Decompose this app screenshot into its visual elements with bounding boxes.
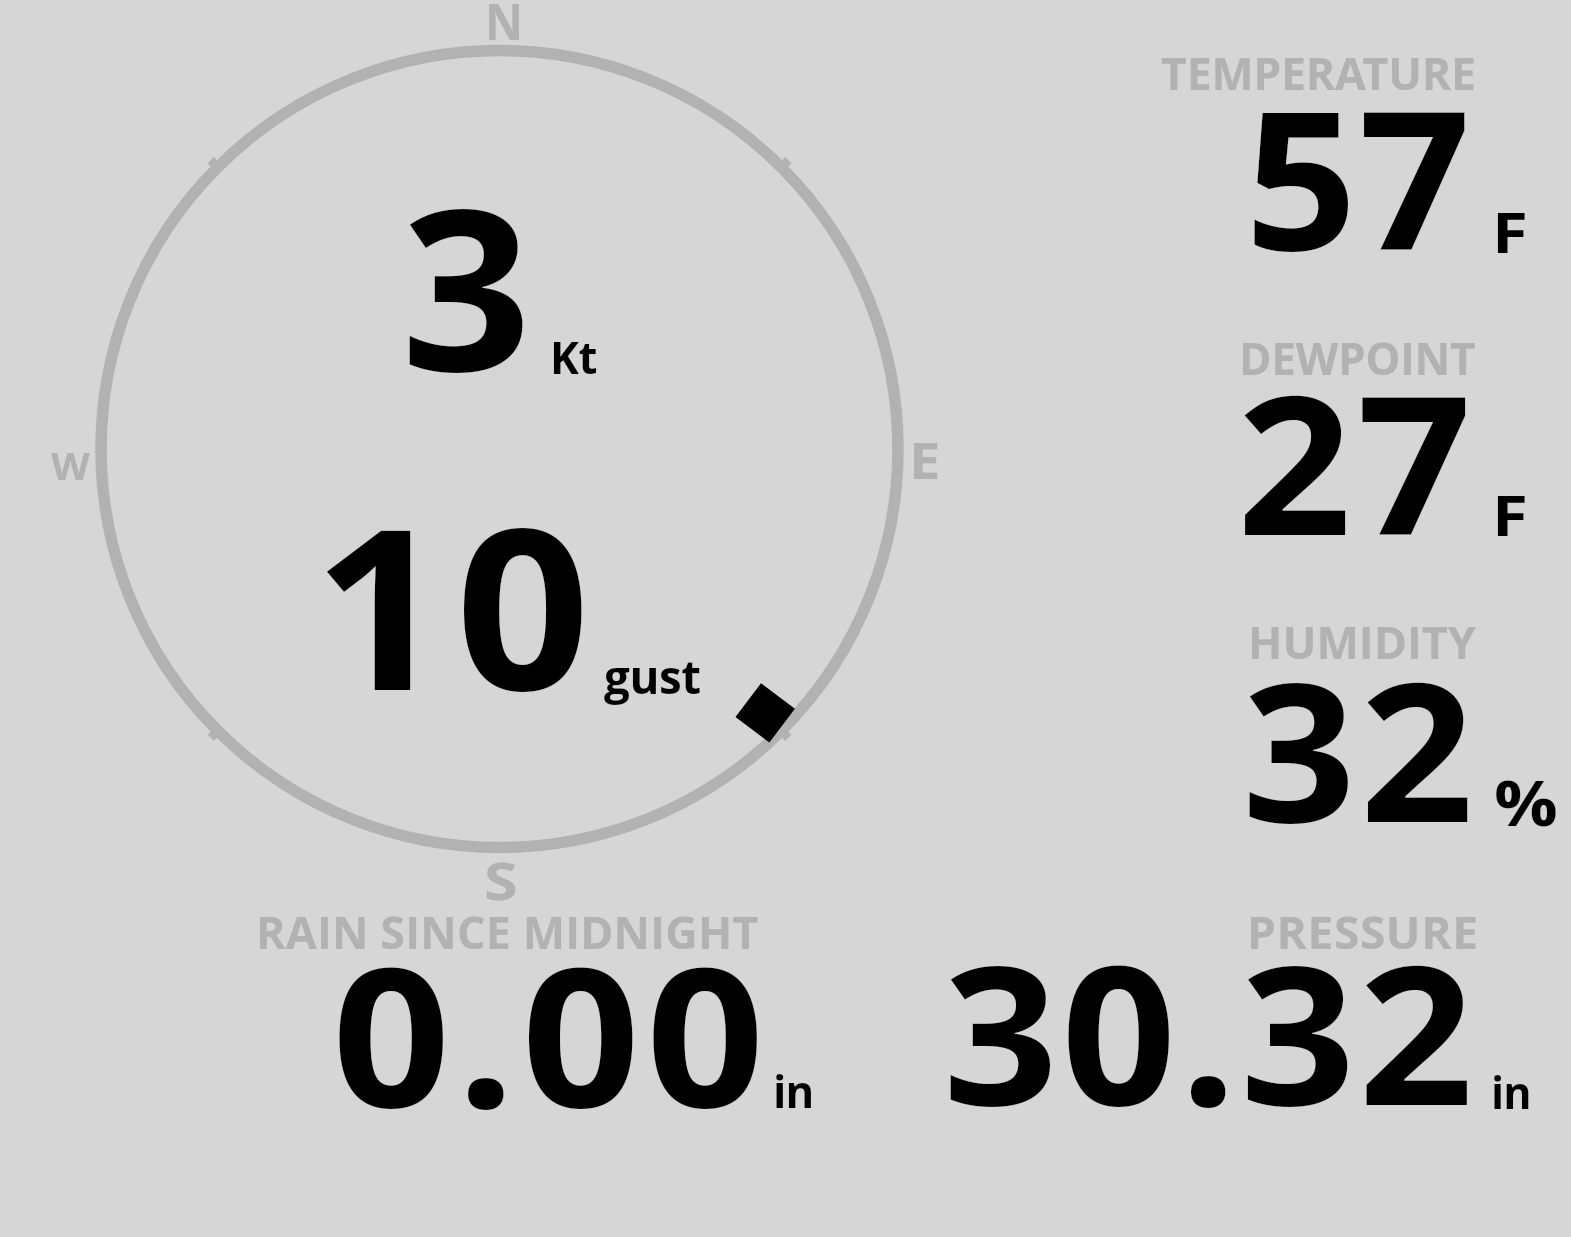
button[interactable]: Pressure 30.32 in [900,900,1550,1130]
staticText: Kt [550,326,597,387]
staticText: 10 [313,451,598,755]
staticText: 57 [1245,44,1473,307]
staticText: in [1491,1061,1531,1122]
button[interactable]: Dewpoint 27 F [1130,325,1571,565]
staticText: S [484,845,518,915]
staticText: 0.00 [332,901,771,1164]
staticText: DEWPOINT [1239,327,1475,388]
staticText: F [1492,476,1528,552]
staticText: 27 [1237,329,1477,592]
button[interactable]: Temperature 57 F [1130,40,1571,280]
staticText: W [51,439,90,491]
staticText: 30.32 [943,899,1478,1162]
staticText: in [773,1060,814,1122]
button[interactable]: Wind 3 knots gusting 10 knots [100,48,900,848]
staticText: N [485,0,523,54]
staticText: E [909,426,940,494]
staticText: gust [604,644,701,707]
staticText: 32 [1242,616,1478,879]
staticText: 3 [401,132,532,436]
button[interactable]: Humidity 32 percent [1130,610,1571,850]
staticText: F [1492,193,1528,269]
staticText: PRESSURE [1247,901,1479,962]
staticText: % [1494,759,1559,844]
button[interactable]: Rain since midnight 0.00 in [240,900,840,1130]
staticText: RAIN SINCE MIDNIGHT [256,901,759,962]
staticText: TEMPERATURE [1161,42,1476,103]
staticText: HUMIDITY [1248,611,1476,673]
